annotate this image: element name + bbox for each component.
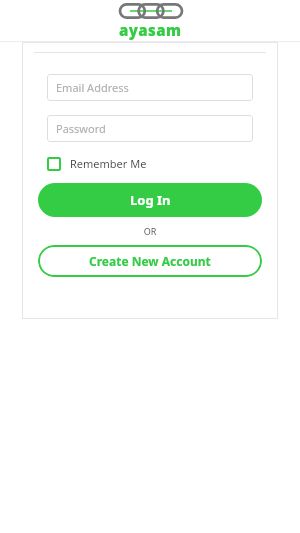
button[interactable]: Remember Me: [47, 156, 147, 171]
staticText: Log In: [130, 191, 171, 209]
staticText: ayasam: [119, 20, 182, 40]
staticText: Create New Account: [89, 253, 211, 269]
button[interactable]: Email Address: [47, 74, 253, 101]
button[interactable]: Password: [47, 115, 253, 142]
other: Ayasam logo: [120, 3, 182, 19]
staticText: OR: [22, 225, 278, 237]
button[interactable]: Create New Account: [38, 245, 262, 277]
staticText: Remember Me: [70, 156, 147, 171]
staticText: Email Address: [56, 80, 129, 95]
staticText: Password: [56, 121, 106, 136]
button[interactable]: Log In: [38, 183, 262, 217]
